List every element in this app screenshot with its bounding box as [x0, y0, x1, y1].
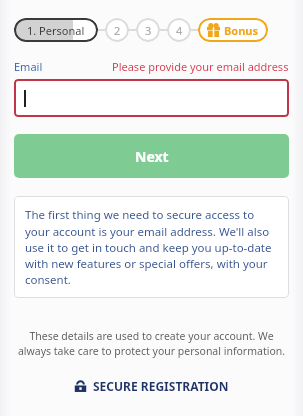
staticText: 3	[145, 23, 152, 38]
staticText: 4	[176, 23, 183, 38]
staticText: The first thing we need to secure access…	[25, 207, 278, 287]
button[interactable]	[14, 79, 289, 117]
staticText: Bonus	[224, 23, 259, 38]
staticText: 1. Personal	[27, 23, 85, 38]
button[interactable]: Secure registration	[0, 378, 303, 394]
other: Secure registration	[74, 380, 87, 393]
staticText: 2	[114, 23, 121, 38]
button[interactable]: Bonus gift	[198, 18, 268, 42]
button[interactable]: 1. Personal	[14, 18, 98, 42]
staticText: Next	[135, 147, 169, 166]
staticText: Please provide your email address	[112, 59, 289, 74]
staticText: SECURE REGISTRATION	[93, 378, 229, 394]
staticText: Email	[14, 59, 43, 74]
button[interactable]: Next	[14, 134, 289, 178]
staticText: These details are used to create your ac…	[13, 329, 290, 358]
button[interactable]: 2	[105, 18, 129, 42]
button[interactable]: 3	[136, 18, 160, 42]
other: Bonus gift	[207, 24, 220, 37]
button[interactable]: 4	[167, 18, 191, 42]
